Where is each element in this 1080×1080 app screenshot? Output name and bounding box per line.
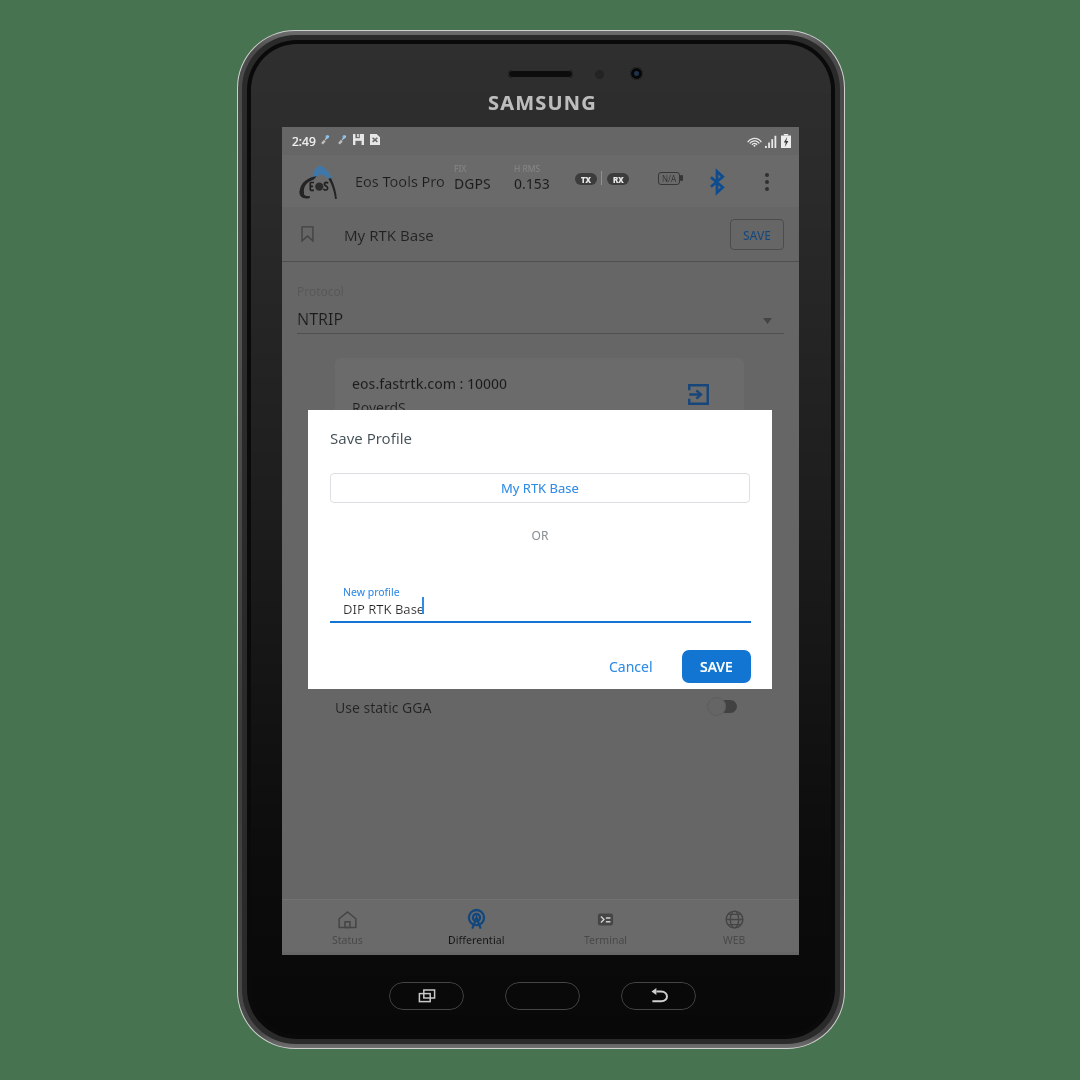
staticText: Protocol <box>297 283 344 299</box>
button[interactable]: Differential <box>412 900 541 952</box>
staticText: SAMSUNG <box>488 89 597 116</box>
button[interactable]: SAVE <box>730 219 784 250</box>
staticText: N/A <box>662 173 677 184</box>
staticText: RoverdS <box>352 398 406 417</box>
button[interactable]: My RTK Base <box>282 207 799 261</box>
button[interactable]: WEB <box>670 900 799 952</box>
other: Recents <box>417 986 437 1006</box>
staticText: Status <box>332 933 363 947</box>
staticText: 2:49 <box>292 133 316 149</box>
staticText: Differential <box>448 933 505 947</box>
button[interactable]: Connect <box>683 379 713 409</box>
button[interactable]: Bluetooth <box>702 167 732 197</box>
button[interactable]: Status <box>282 900 412 952</box>
button[interactable]: SAVE <box>682 650 751 683</box>
staticText: H RMS <box>514 163 541 175</box>
button[interactable]: My RTK Base <box>330 473 750 503</box>
staticText: eos.fastrtk.com : 10000 <box>352 374 508 393</box>
button[interactable]: More options <box>752 167 782 197</box>
staticText: DIP RTK Base <box>343 600 425 618</box>
staticText: My RTK Base <box>501 479 579 497</box>
staticText: RX <box>613 174 624 185</box>
staticText: Save Profile <box>330 428 413 448</box>
other: Back <box>648 985 670 1007</box>
button[interactable]: Cancel <box>601 650 661 683</box>
staticText: Terminal <box>584 933 627 947</box>
staticText: Eos Tools Pro <box>355 171 445 191</box>
staticText: 0.153 <box>514 174 550 193</box>
button[interactable]: Terminal <box>541 900 670 952</box>
button[interactable]: Back <box>621 982 696 1010</box>
button[interactable] <box>505 982 580 1010</box>
staticText: SAVE <box>700 657 733 676</box>
staticText: DGPS <box>454 174 491 193</box>
staticText: WEB <box>723 933 746 947</box>
staticText: SAVE <box>743 227 772 243</box>
staticText: FIX <box>454 163 467 175</box>
staticText: NTRIP <box>297 308 344 330</box>
button[interactable]: Use static GGA <box>282 684 799 728</box>
staticText: New profile <box>343 585 400 599</box>
button[interactable]: Recents <box>389 982 464 1010</box>
staticText: TX <box>581 174 591 185</box>
staticText: My RTK Base <box>344 225 434 245</box>
button[interactable]: eos.fastrtk.com : 10000 <box>335 358 744 476</box>
staticText: OR <box>308 527 772 543</box>
staticText: Use static GGA <box>335 698 432 717</box>
staticText: Cancel <box>609 657 653 676</box>
